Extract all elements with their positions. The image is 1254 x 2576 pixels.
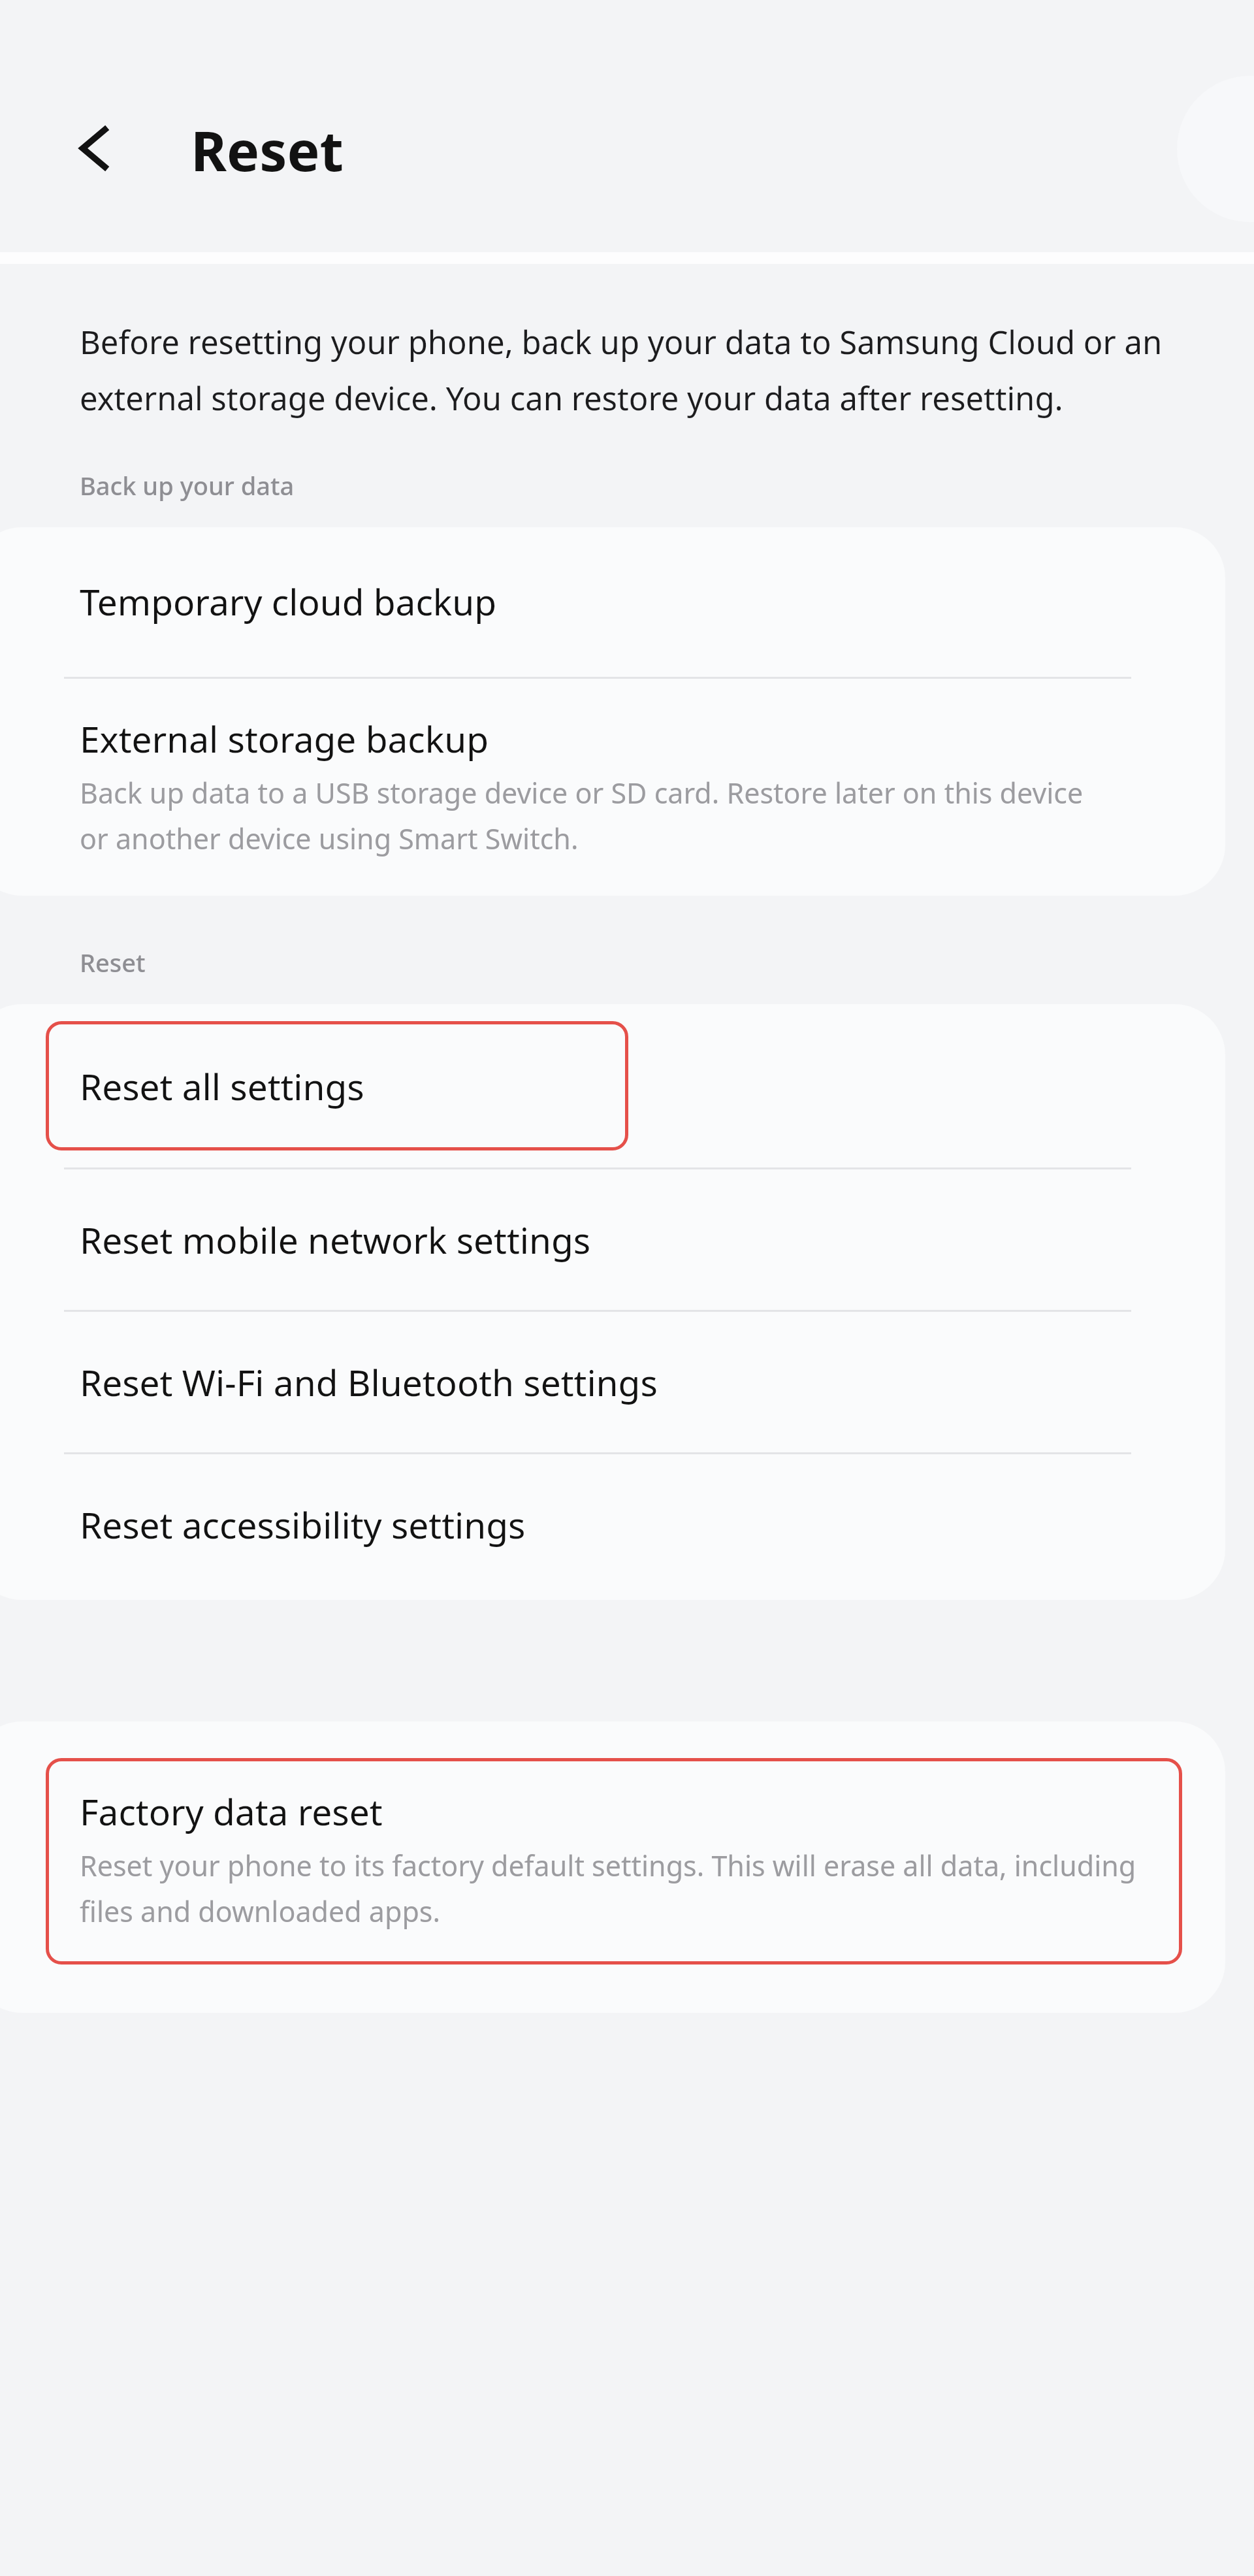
- staticText: Reset: [191, 112, 344, 187]
- button[interactable]: Reset accessibility settings: [0, 1454, 1225, 1600]
- staticText: Temporary cloud backup: [80, 577, 497, 626]
- button[interactable]: Temporary cloud backup: [0, 527, 1225, 677]
- button[interactable]: Navigate up: [60, 112, 132, 184]
- staticText: Before resetting your phone, back up you…: [80, 320, 1177, 420]
- button[interactable]: Reset mobile network settings: [0, 1169, 1225, 1310]
- staticText: Back up your data: [80, 468, 295, 502]
- staticText: Reset accessibility settings: [80, 1500, 526, 1549]
- staticText: Reset Wi-Fi and Bluetooth settings: [80, 1358, 658, 1407]
- button[interactable]: Reset Wi-Fi and Bluetooth settings: [0, 1312, 1225, 1452]
- button[interactable]: Reset all settings: [46, 1021, 628, 1150]
- staticText: Reset all settings: [80, 1062, 364, 1111]
- staticText: Factory data reset: [80, 1787, 383, 1836]
- staticText: External storage backup: [80, 714, 489, 763]
- staticText: Reset: [80, 945, 146, 979]
- staticText: Back up data to a USB storage device or …: [80, 774, 1108, 858]
- staticText: Reset mobile network settings: [80, 1215, 591, 1264]
- button[interactable]: External storage backup: [0, 679, 1225, 896]
- staticText: Reset your phone to its factory default …: [80, 1846, 1146, 1931]
- button[interactable]: Factory data reset: [46, 1758, 1182, 1965]
